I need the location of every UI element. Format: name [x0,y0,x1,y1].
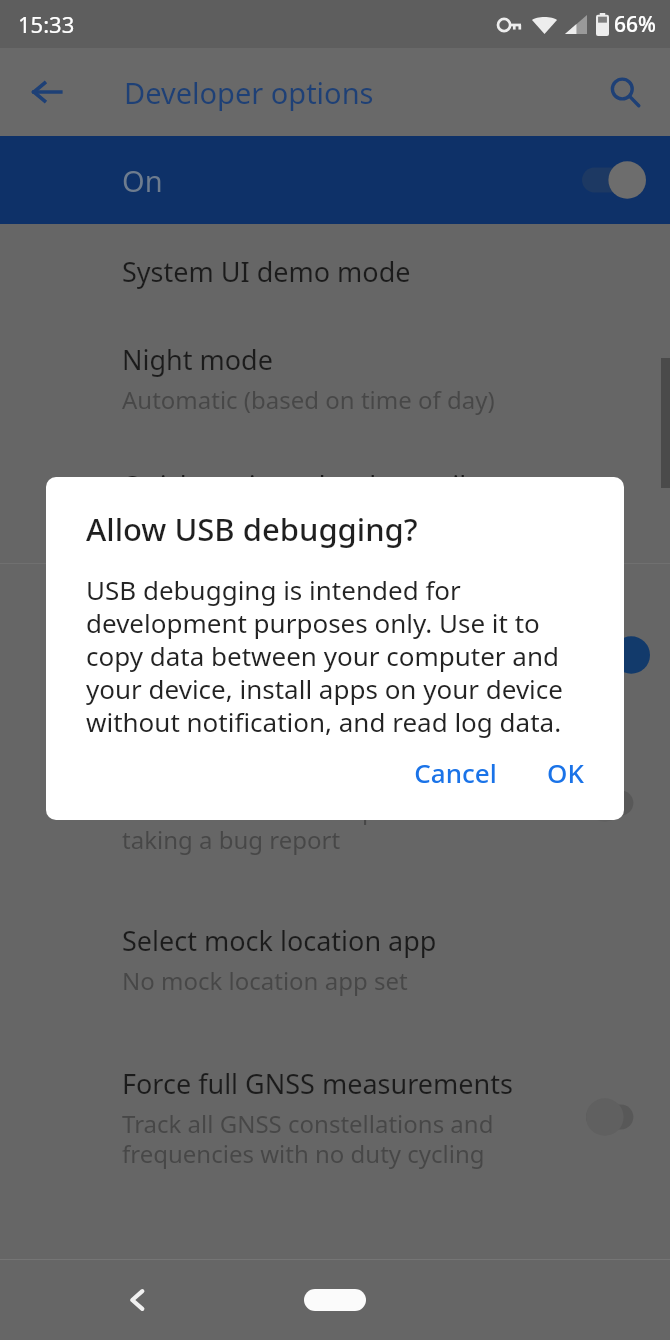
staticText: 15:33 [18,9,75,39]
staticText: Select mock location app [122,922,437,959]
button[interactable]: Force full GNSS measurements [0,1042,670,1192]
staticText: No mock location app set [122,964,408,997]
staticText: Force full GNSS measurements [122,1065,513,1102]
staticText: On [122,161,163,200]
staticText: Track all GNSS constellations and freque… [122,1107,494,1170]
staticText: System UI demo mode [122,253,411,290]
staticText: Allow USB debugging? [86,508,418,550]
staticText: 66% [614,10,656,39]
staticText: USB debugging is intended for developmen… [86,572,590,740]
staticText: OK [547,755,584,790]
button[interactable]: Quick settings developer tiles [0,441,670,529]
button[interactable]: Toggle Force full GNSS measurements [586,1097,650,1137]
button[interactable]: Home [304,1289,366,1311]
staticText: Quick settings developer tiles [122,467,495,504]
staticText: Developer options [124,73,374,112]
button[interactable]: On [0,136,670,224]
staticText: Night mode [122,341,273,378]
button[interactable]: USB debugging [0,592,670,718]
button[interactable]: OK [533,745,598,800]
staticText: Show a button in the power menu for taki… [122,793,544,856]
button[interactable]: Bug report shortcut [0,728,670,878]
button[interactable]: Search [596,63,654,121]
button[interactable]: Back [112,1274,164,1326]
staticText: USB debugging [122,618,320,655]
button[interactable]: Back [18,63,76,121]
button[interactable]: Toggle USB debugging [586,635,650,675]
button[interactable]: System UI demo mode [0,227,670,315]
button[interactable]: Night mode [0,315,670,441]
button[interactable]: Select mock location app [0,896,670,1022]
staticText: Automatic (based on time of day) [122,383,495,416]
staticText: Cancel [414,755,497,790]
button[interactable]: Cancel [400,745,511,800]
button[interactable]: Toggle Bug report shortcut [586,783,650,823]
staticText: Debug mode when USB is connected [122,660,538,693]
